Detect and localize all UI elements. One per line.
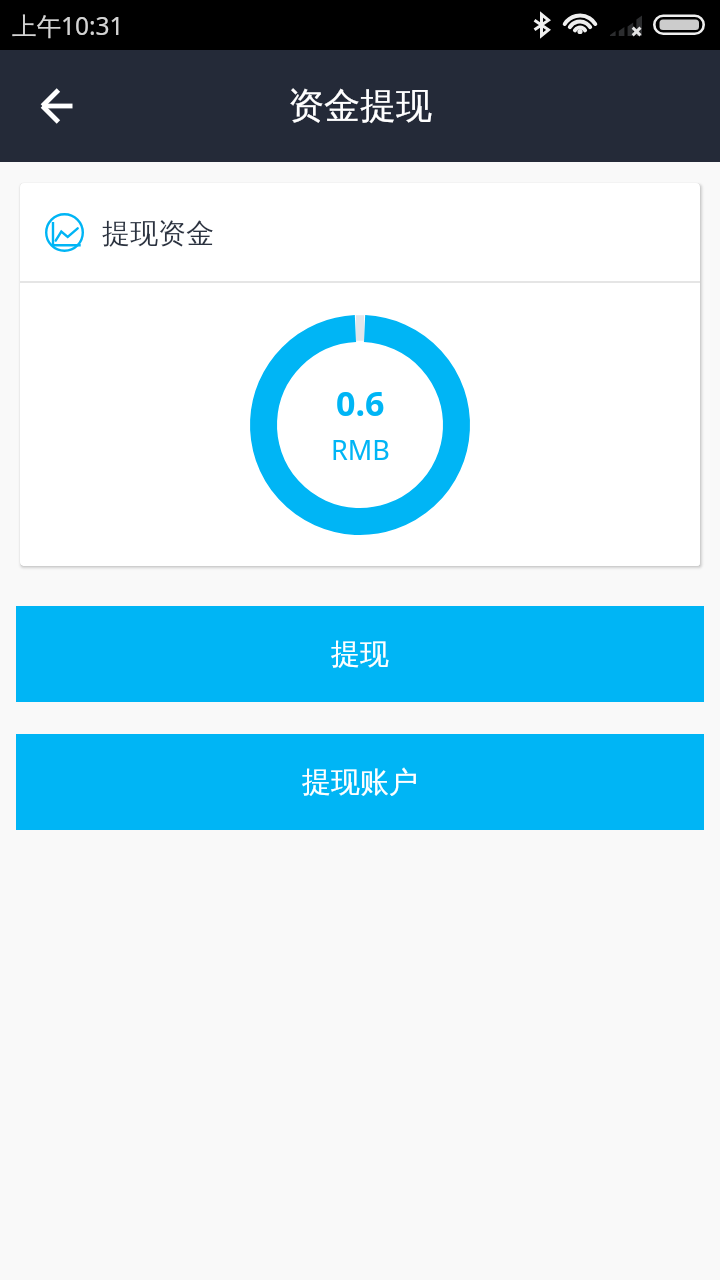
- staticText: 上午10:31: [12, 9, 124, 42]
- staticText: RMB: [331, 431, 390, 468]
- staticText: 提现资金: [102, 216, 214, 251]
- staticText: 提现账户: [302, 764, 418, 801]
- button[interactable]: 提现账户: [16, 734, 704, 830]
- staticText: 资金提现: [288, 83, 432, 128]
- button[interactable]: Back: [14, 50, 98, 162]
- button[interactable]: 提现: [16, 606, 704, 702]
- staticText: 提现: [331, 636, 389, 673]
- staticText: 0.6: [336, 380, 385, 426]
